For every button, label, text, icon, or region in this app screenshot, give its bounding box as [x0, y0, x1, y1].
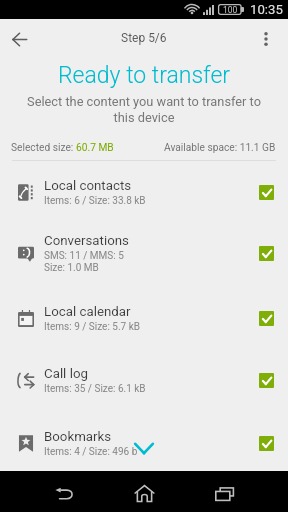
staticText: Items: 9 / Size: 5.7 kB — [44, 321, 140, 333]
staticText: Bookmarks — [44, 429, 112, 445]
staticText: Size: 1.0 MB — [44, 262, 99, 274]
staticText: SMS: 11 / MMS: 5 — [44, 250, 124, 262]
button[interactable]: Selected — [259, 246, 274, 261]
staticText: Local calendar — [44, 304, 131, 320]
staticText: Selected size: — [11, 142, 76, 154]
button[interactable]: Recent apps — [199, 476, 251, 511]
button[interactable]: Selected — [259, 311, 274, 326]
staticText: Call log — [44, 366, 88, 382]
button[interactable]: Selected — [259, 436, 274, 451]
staticText: Conversations — [44, 233, 129, 249]
staticText: Local contacts — [44, 178, 132, 194]
button[interactable]: Call log — [0, 349, 288, 412]
button[interactable]: More options — [244, 20, 288, 58]
staticText: Select the content you want to transfer … — [0, 94, 288, 126]
staticText: Ready to transfer — [58, 62, 231, 89]
button[interactable]: Conversations — [0, 220, 288, 287]
staticText: Items: 35 / Size: 6.1 kB — [44, 383, 146, 395]
button[interactable]: Selected — [259, 373, 274, 388]
button[interactable]: Selected — [259, 185, 274, 200]
button[interactable]: Local calendar — [0, 287, 288, 349]
button[interactable]: Home — [118, 476, 170, 511]
staticText: 10:35 — [250, 2, 283, 17]
button[interactable]: Back — [38, 476, 90, 511]
staticText: Items: 6 / Size: 33.8 kB — [44, 195, 146, 207]
button[interactable]: Bookmarks — [0, 412, 288, 474]
staticText: Step 5/6 — [121, 31, 167, 45]
button[interactable]: Back — [0, 20, 38, 58]
staticText: 100 — [223, 5, 238, 15]
button[interactable]: Local contacts — [0, 165, 288, 220]
staticText: Available space: 11.1 GB — [164, 142, 276, 154]
staticText: Items: 4 / Size: 496 b — [44, 446, 138, 458]
staticText: 60.7 MB — [76, 142, 114, 154]
